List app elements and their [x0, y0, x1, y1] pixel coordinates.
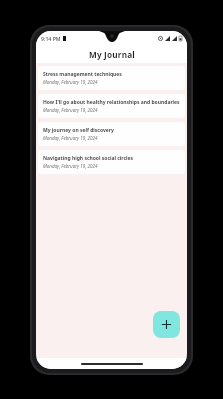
staticText: My journey on self discovery — [43, 127, 114, 134]
button[interactable]: Stress management techniques — [38, 66, 185, 90]
staticText: Monday, February 19, 2024 — [43, 135, 98, 141]
staticText: Monday, February 19, 2024 — [43, 163, 98, 169]
staticText: 9:14 PM — [41, 35, 61, 42]
button[interactable]: Navigating high school social circles — [38, 150, 185, 174]
staticText: Monday, February 19, 2024 — [43, 107, 98, 113]
staticText: My Journal — [89, 49, 135, 60]
staticText: Monday, February 19, 2024 — [43, 79, 98, 85]
staticText: How I'll go about healthy relationships … — [43, 99, 180, 106]
button[interactable]: Add journal entry — [153, 311, 180, 338]
staticText: Navigating high school social circles — [43, 155, 134, 162]
button[interactable]: How I'll go about healthy relationships … — [38, 94, 185, 118]
button[interactable]: My journey on self discovery — [38, 122, 185, 146]
staticText: Stress management techniques — [43, 71, 122, 78]
